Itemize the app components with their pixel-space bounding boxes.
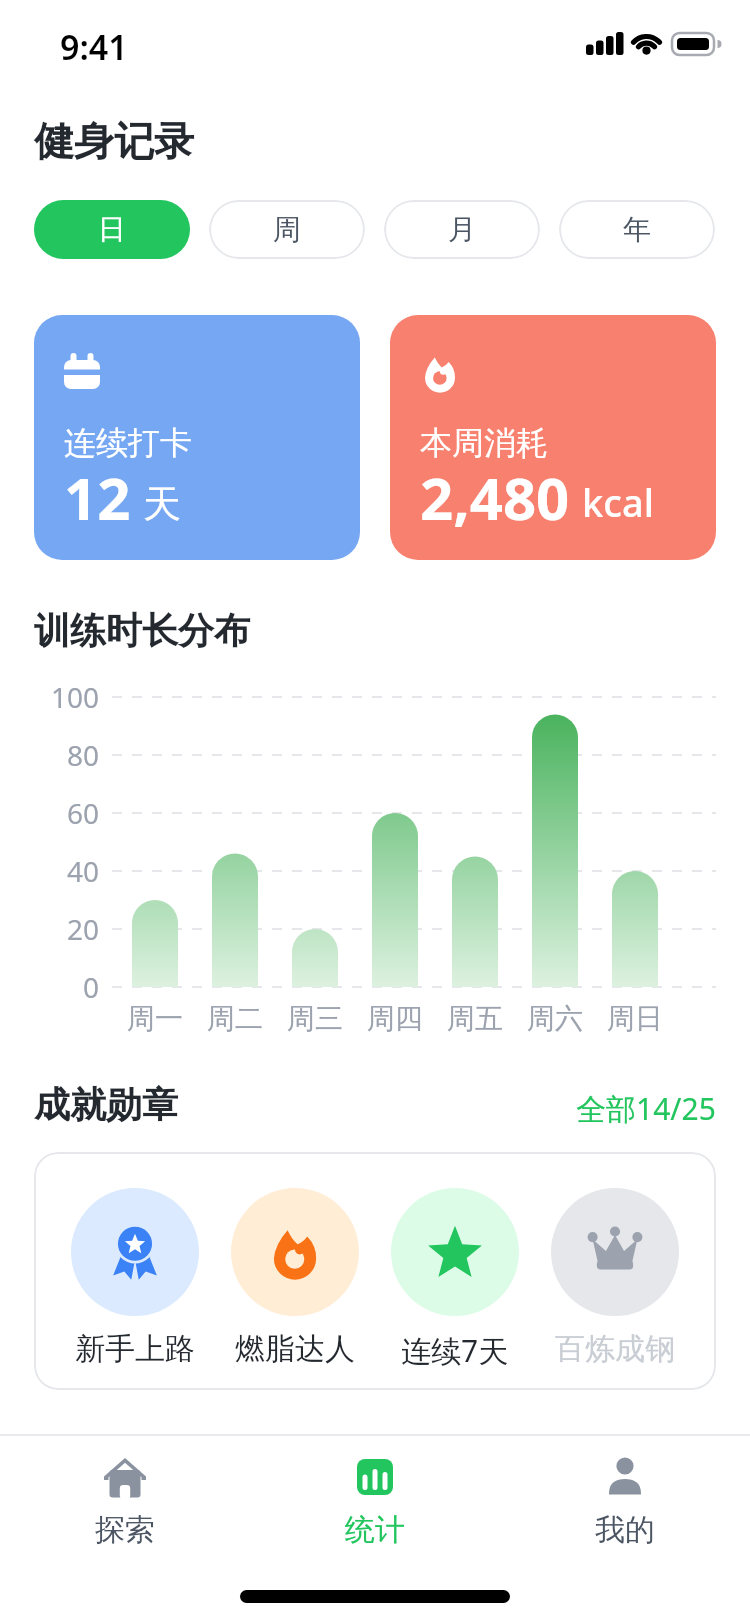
staticText: 探索 bbox=[95, 1511, 155, 1549]
staticText: 9:41 bbox=[60, 24, 128, 70]
staticText: 我的 bbox=[595, 1511, 655, 1549]
staticText: 月 bbox=[448, 212, 476, 247]
button[interactable]: 我的 bbox=[545, 1455, 705, 1549]
button[interactable]: 新手上路 bbox=[55, 1152, 215, 1368]
staticText: 连续7天 bbox=[401, 1330, 509, 1371]
staticText: 100 bbox=[51, 678, 100, 716]
button[interactable]: 连续打卡 bbox=[34, 315, 360, 560]
staticText: kcal bbox=[582, 476, 654, 528]
staticText: 新手上路 bbox=[75, 1330, 195, 1368]
button[interactable]: 百炼成钢 bbox=[535, 1152, 695, 1368]
button[interactable]: 本周消耗 bbox=[390, 315, 716, 560]
button[interactable]: 年 bbox=[559, 200, 715, 259]
staticText: 60 bbox=[67, 794, 100, 832]
staticText: 80 bbox=[67, 736, 100, 774]
staticText: 日 bbox=[98, 212, 126, 247]
staticText: 连续打卡 bbox=[64, 423, 192, 463]
button[interactable]: 全部14/25 bbox=[416, 1088, 716, 1129]
staticText: 周五 bbox=[447, 1001, 503, 1036]
button[interactable]: 连续7天 bbox=[375, 1152, 535, 1371]
button[interactable]: 探索 bbox=[45, 1455, 205, 1549]
staticText: 天 bbox=[143, 480, 181, 528]
staticText: 成就勋章 bbox=[34, 1082, 178, 1127]
button[interactable]: 周 bbox=[209, 200, 365, 259]
staticText: 周三 bbox=[287, 1001, 343, 1036]
button[interactable]: 月 bbox=[384, 200, 540, 259]
staticText: 统计 bbox=[345, 1511, 405, 1549]
staticText: 周六 bbox=[527, 1001, 583, 1036]
staticText: 周四 bbox=[367, 1001, 423, 1036]
button[interactable]: 日 bbox=[34, 200, 190, 259]
staticText: 健身记录 bbox=[34, 116, 194, 166]
staticText: 0 bbox=[83, 968, 100, 1006]
staticText: 燃脂达人 bbox=[235, 1330, 355, 1368]
staticText: 周日 bbox=[607, 1001, 663, 1036]
staticText: 2,480 bbox=[420, 458, 570, 537]
staticText: 百炼成钢 bbox=[555, 1330, 675, 1368]
staticText: 12 bbox=[64, 458, 131, 537]
staticText: 周二 bbox=[207, 1001, 263, 1036]
staticText: 本周消耗 bbox=[420, 423, 548, 463]
staticText: 周一 bbox=[127, 1001, 183, 1036]
button[interactable]: 统计 bbox=[295, 1455, 455, 1549]
staticText: 年 bbox=[623, 212, 651, 247]
staticText: 40 bbox=[67, 852, 100, 890]
staticText: 训练时长分布 bbox=[34, 608, 250, 653]
staticText: 20 bbox=[67, 910, 100, 948]
staticText: 全部14/25 bbox=[576, 1088, 716, 1129]
button[interactable]: 燃脂达人 bbox=[215, 1152, 375, 1368]
staticText: 周 bbox=[273, 212, 301, 247]
